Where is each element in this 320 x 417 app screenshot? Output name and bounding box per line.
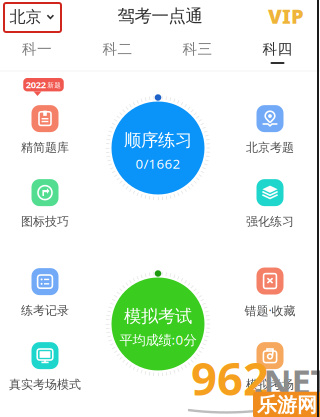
staticText: 新题 xyxy=(47,81,61,89)
staticText: 精简题库 xyxy=(21,140,69,155)
staticText: 顺序练习 xyxy=(124,129,192,151)
button[interactable]: 图标技巧 xyxy=(0,179,93,229)
staticText: 模拟考试 xyxy=(124,305,192,327)
staticText: .NET xyxy=(253,358,320,404)
button[interactable]: 科三 xyxy=(161,35,233,69)
staticText: 错题·收藏 xyxy=(244,302,295,318)
button[interactable]: 真实考场模式 xyxy=(0,342,93,392)
staticText: 北京考题 xyxy=(246,140,294,155)
staticText: 0/1662 xyxy=(135,155,180,172)
staticText: 乐游网 xyxy=(257,393,317,417)
button[interactable]: 北京 xyxy=(3,2,60,31)
staticText: 科三 xyxy=(182,40,212,58)
staticText: 图标技巧 xyxy=(21,214,69,229)
staticText: 962 xyxy=(191,348,269,408)
button[interactable]: 科一 xyxy=(1,35,73,69)
staticText: 科一 xyxy=(22,40,52,58)
button[interactable]: 模拟考试 xyxy=(105,271,211,377)
button[interactable]: 模拟考场 xyxy=(222,342,318,392)
staticText: 科二 xyxy=(102,40,132,58)
button[interactable]: 科四 xyxy=(241,35,313,69)
staticText: 模拟考场 xyxy=(246,377,294,392)
button[interactable]: 练考记录 xyxy=(0,268,93,318)
staticText: 科四 xyxy=(262,40,292,58)
staticText: 平均成绩:0分 xyxy=(119,331,196,348)
button[interactable]: 精简题库 xyxy=(0,105,93,155)
staticText: VIP xyxy=(268,3,304,29)
button[interactable]: 错题·收藏 xyxy=(222,268,318,318)
staticText: 2022 xyxy=(26,78,46,91)
staticText: 练考记录 xyxy=(21,303,69,318)
staticText: 强化练习 xyxy=(246,214,294,229)
button[interactable]: 强化练习 xyxy=(222,179,318,229)
button[interactable]: 顺序练习 xyxy=(105,95,211,201)
button[interactable]: 科二 xyxy=(81,35,153,69)
staticText: 驾考一点通 xyxy=(117,5,202,27)
staticText: 真实考场模式 xyxy=(9,377,81,392)
staticText: 北京 xyxy=(9,7,41,27)
button[interactable]: 北京考题 xyxy=(222,105,318,155)
button[interactable]: VIP xyxy=(264,3,308,29)
